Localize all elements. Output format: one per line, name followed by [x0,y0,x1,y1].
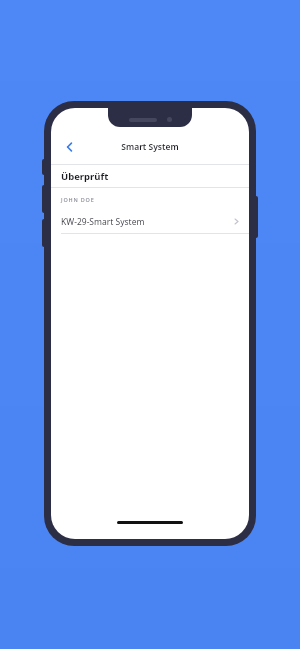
staticText: KW-29-Smart System [61,216,232,228]
staticText: Überprüft [61,170,109,183]
staticText: JOHN DOE [61,196,95,203]
staticText: Smart System [121,141,179,153]
button[interactable]: Back [59,136,81,158]
button[interactable]: KW-29-Smart System [51,210,249,233]
